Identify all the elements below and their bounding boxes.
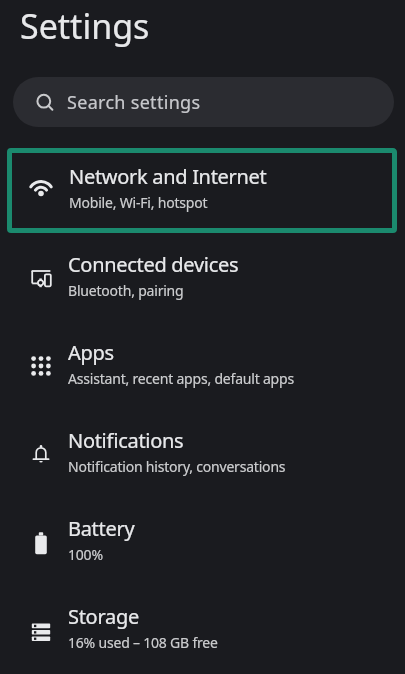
staticText: Search settings (67, 90, 201, 115)
button[interactable]: Connected devices (0, 233, 405, 321)
button[interactable]: Notifications (0, 409, 405, 497)
staticText: Bluetooth, pairing (68, 281, 184, 300)
staticText: Battery (68, 515, 135, 542)
staticText: Storage (68, 603, 139, 630)
staticText: 16% used – 108 GB free (68, 633, 218, 652)
button[interactable]: Battery (0, 497, 405, 585)
button[interactable]: Apps (0, 321, 405, 409)
staticText: Network and Internet (69, 163, 267, 190)
staticText: Mobile, Wi-Fi, hotspot (69, 193, 208, 212)
staticText: Notifications (68, 427, 184, 454)
button[interactable]: Search settings (13, 77, 394, 127)
staticText: Assistant, recent apps, default apps (68, 369, 294, 388)
staticText: Apps (68, 339, 114, 366)
staticText: Settings (20, 3, 150, 49)
staticText: Connected devices (68, 251, 239, 278)
staticText: Notification history, conversations (68, 457, 286, 476)
button[interactable]: Network and Internet (7, 148, 397, 233)
staticText: 100% (68, 545, 103, 564)
button[interactable]: Storage (0, 585, 405, 673)
